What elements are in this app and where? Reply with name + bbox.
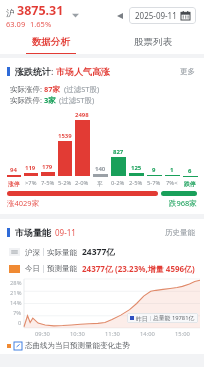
staticText: 预测量能	[47, 264, 77, 273]
staticText: 0	[18, 319, 22, 327]
staticText: 140	[95, 165, 106, 173]
button[interactable]: 数据分析	[0, 30, 102, 53]
staticText: 125	[131, 164, 142, 172]
staticText: 1.65%	[30, 19, 52, 29]
staticText: 09:30	[35, 330, 50, 338]
button[interactable]: Previous day	[115, 11, 124, 20]
staticText: 179	[42, 163, 53, 171]
staticText: 3875.31	[17, 2, 64, 19]
staticText: 827	[113, 148, 124, 156]
staticText: 14%	[10, 299, 22, 307]
staticText: 7%	[13, 309, 22, 317]
staticText: 10:30	[70, 330, 85, 338]
staticText: 更多	[180, 67, 195, 76]
staticText: 15:00	[175, 330, 190, 338]
staticText: 沪深	[25, 248, 40, 257]
staticText: 21%	[10, 289, 22, 297]
staticText: >7%	[25, 179, 37, 187]
staticText: 24377亿	[82, 246, 115, 258]
staticText: (过滤ST股)	[64, 84, 100, 94]
button[interactable]: 更多	[178, 65, 197, 78]
staticText: 股票列表	[134, 36, 172, 48]
staticText: 实际量能	[47, 248, 77, 257]
staticText: 实际跌停:	[10, 95, 44, 105]
staticText: 87家	[44, 84, 61, 94]
staticText: 6	[188, 167, 192, 175]
staticText: 昨日	[136, 315, 148, 322]
staticText: 1	[170, 166, 174, 174]
staticText: 14:00	[140, 330, 155, 338]
staticText: 数据分析	[32, 36, 70, 48]
staticText: 涨4029家	[7, 198, 40, 208]
staticText: 市场量能	[15, 227, 51, 238]
staticText: 5-2%	[58, 179, 72, 187]
staticText: :	[51, 65, 56, 77]
staticText: 3家	[44, 95, 56, 105]
staticText: 2-5%	[129, 179, 143, 187]
staticText: 总量能 19781亿	[153, 314, 195, 322]
staticText: 跌停	[184, 180, 196, 187]
staticText: 涨停	[8, 180, 20, 187]
staticText: 1539	[58, 132, 72, 140]
staticText: 9	[152, 166, 156, 174]
staticText: 28%	[10, 279, 22, 287]
staticText: 2-0%	[75, 179, 89, 187]
staticText: 7%<	[166, 179, 178, 187]
button[interactable]: 2025-09-11	[129, 7, 196, 24]
staticText: 2025-09-11	[135, 10, 177, 21]
other: Info	[14, 342, 22, 350]
other: Expand	[72, 12, 79, 19]
staticText: 11:30	[105, 330, 120, 338]
staticText: 涨跌统计	[15, 66, 51, 77]
staticText: 63.09	[6, 19, 26, 29]
staticText: 市场人气高涨	[56, 66, 110, 77]
staticText: 实际涨停:	[10, 84, 44, 94]
staticText: 跌968家	[169, 198, 197, 208]
staticText: 5-7%	[147, 179, 161, 187]
staticText: 119	[25, 164, 36, 172]
staticText: 历史量能	[165, 228, 195, 237]
staticText: 94	[10, 166, 17, 174]
staticText: 0-2%	[111, 179, 125, 187]
staticText: 2498	[75, 111, 89, 119]
staticText: 24377亿 (23.23%,增量 4596亿)	[82, 263, 195, 274]
staticText: (过滤ST股)	[59, 95, 95, 105]
button[interactable]: 股票列表	[102, 30, 204, 53]
staticText: 7-5%	[41, 179, 55, 187]
button[interactable]: 沪	[6, 2, 64, 29]
staticText: 今日	[25, 264, 40, 273]
staticText: 平	[97, 180, 103, 187]
staticText: 沪	[6, 8, 15, 19]
staticText: 09-11	[55, 227, 76, 238]
button[interactable]: 历史量能	[163, 226, 197, 239]
staticText: 态曲线为当日预测量能变化走势	[25, 341, 130, 350]
